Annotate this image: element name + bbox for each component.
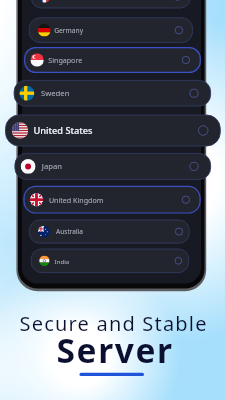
button[interactable]: Japan [15,153,211,179]
button[interactable]: Sweden [14,80,211,106]
button[interactable]: United Kingdom [24,186,200,213]
button[interactable]: India [31,249,189,273]
button[interactable]: United States [6,115,221,146]
button[interactable]: Australia [29,220,189,243]
button[interactable]: Singapore [25,48,201,73]
button[interactable]: France [32,0,191,8]
button[interactable]: Germany [29,18,192,43]
